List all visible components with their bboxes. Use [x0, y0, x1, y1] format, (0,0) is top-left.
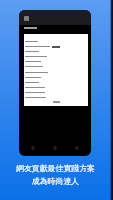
- button[interactable]: App icon: [19, 10, 91, 156]
- other: App icon: [24, 16, 29, 21]
- staticText: 網友貢獻最佳實踐方案 成為時尚達人: [16, 163, 95, 187]
